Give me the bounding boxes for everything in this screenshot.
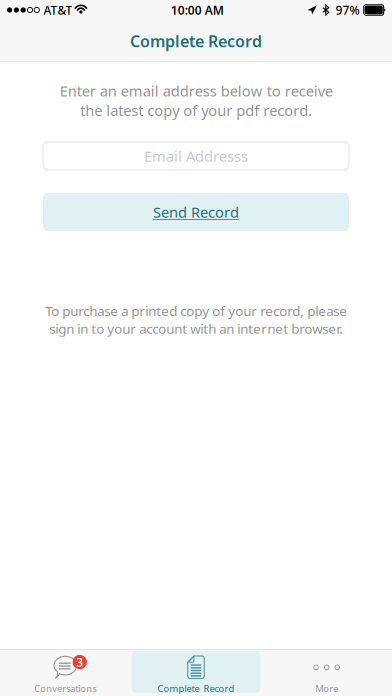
staticText: 3 bbox=[76, 654, 83, 670]
button[interactable]: Complete Record bbox=[131, 649, 261, 696]
staticText: Enter an email address below to receive … bbox=[59, 81, 332, 120]
staticText: Complete Record bbox=[157, 682, 234, 695]
staticText: Send Record bbox=[153, 202, 239, 222]
staticText: Email Addresss bbox=[144, 146, 248, 166]
staticText: 97% bbox=[336, 2, 360, 18]
staticText: More bbox=[315, 682, 338, 695]
staticText: To purchase a printed copy of your recor… bbox=[45, 302, 347, 337]
staticText: AT&T bbox=[43, 2, 72, 18]
button[interactable]: More bbox=[261, 649, 392, 696]
staticText: Complete Record bbox=[130, 30, 262, 52]
staticText: Conversations bbox=[34, 682, 96, 695]
button[interactable]: Send Record bbox=[43, 193, 349, 231]
button[interactable]: 3 bbox=[0, 649, 131, 696]
staticText: 10:00 AM bbox=[171, 2, 224, 18]
